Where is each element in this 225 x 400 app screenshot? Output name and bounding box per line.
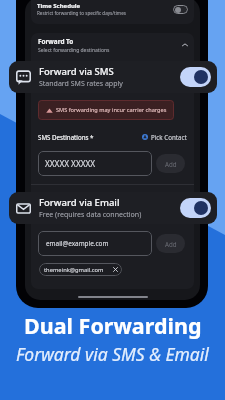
staticText: Time Schedule <box>37 2 81 10</box>
staticText: SMS forwarding may incur carrier charges <box>56 106 167 114</box>
staticText: SMS Destinations * <box>38 133 94 141</box>
staticText: Pick Contact <box>151 133 187 141</box>
button[interactable]: Add <box>156 234 185 253</box>
button[interactable]: Toggle forwarding <box>180 67 211 87</box>
button[interactable]: Toggle forwarding <box>180 198 211 218</box>
staticText: Free (requires data connection) <box>39 210 142 220</box>
button[interactable]: Toggle time schedule <box>173 5 188 14</box>
staticText: XXXXX XXXXX <box>45 158 96 169</box>
button[interactable]: Add <box>156 154 185 173</box>
button[interactable]: Time Schedule <box>31 0 194 24</box>
staticText: Forward via Email <box>39 196 120 209</box>
staticText: themeink@gmail.com <box>44 266 104 274</box>
button[interactable]: email@example.com <box>38 231 152 256</box>
staticText: Forward To <box>38 37 74 46</box>
staticText: Restrict forwarding to specific days/tim… <box>37 10 126 16</box>
button[interactable]: Pick Contact <box>142 133 187 141</box>
staticText: Add <box>165 240 177 248</box>
button[interactable]: themeink@gmail.com <box>39 263 122 276</box>
staticText: Standard SMS rates apply <box>39 79 123 89</box>
staticText: email@example.com <box>46 239 109 248</box>
button[interactable]: Forward via SMS <box>9 61 217 93</box>
button[interactable]: Collapse <box>181 41 189 49</box>
staticText: Forward via SMS & Email <box>16 342 209 366</box>
staticText: Select forwarding destinations <box>38 47 110 54</box>
button[interactable]: XXXXX XXXXX <box>38 151 152 176</box>
staticText: Add <box>165 160 177 168</box>
button[interactable]: Forward via Email <box>9 192 217 224</box>
staticText: Forward via SMS <box>39 65 114 78</box>
staticText: Dual Forwarding <box>24 311 202 340</box>
